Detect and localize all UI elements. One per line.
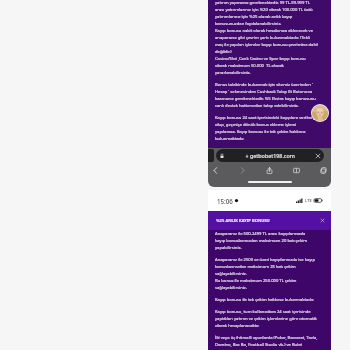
staticText: Kayıp bonusu 24 saat içerisindeki kayıpl… bbox=[215, 115, 315, 141]
button[interactable]: Tabs bbox=[318, 165, 329, 176]
button[interactable]: Bookmarks bbox=[291, 165, 302, 176]
button[interactable]: Share bbox=[264, 165, 275, 176]
staticText: İki veya üç ihtimalli oyunlarda (Poker, … bbox=[215, 335, 318, 348]
staticText: Bonus talebinde bulunmak için sitemiz üz… bbox=[215, 82, 316, 108]
staticText: Kayıp bonusu ile tek çekim hakkınız bulu… bbox=[215, 297, 315, 303]
staticText: yatırım yapmanız gerekmektedir. 99 TL-99… bbox=[215, 0, 319, 75]
staticText: Anaparanız ile 500-2499 TL arası kayıpla… bbox=[215, 231, 308, 251]
staticText: LTE bbox=[305, 198, 312, 204]
button[interactable]: Page info bbox=[219, 153, 225, 159]
staticText: Anaparanız ile 2500 ve üzeri kayıplarını… bbox=[215, 257, 315, 291]
staticText: 15:06 bbox=[217, 197, 233, 205]
button[interactable]: Forward bbox=[237, 165, 248, 176]
button[interactable]: Stop loading bbox=[315, 153, 321, 159]
staticText: %25 ANLIK KAYIP BONUSU bbox=[216, 218, 270, 224]
button[interactable]: Page info bbox=[216, 149, 324, 162]
button[interactable]: Close bbox=[320, 218, 325, 223]
button[interactable]: %25 ANLIK KAYIP BONUSU bbox=[208, 211, 331, 230]
staticText: getbobet198.com bbox=[250, 152, 295, 159]
button[interactable]: Back bbox=[210, 165, 221, 176]
staticText: Kayıp bonusu, tum kullanıcılara 24 saat … bbox=[215, 309, 317, 329]
button[interactable]: Live support bbox=[311, 104, 329, 122]
